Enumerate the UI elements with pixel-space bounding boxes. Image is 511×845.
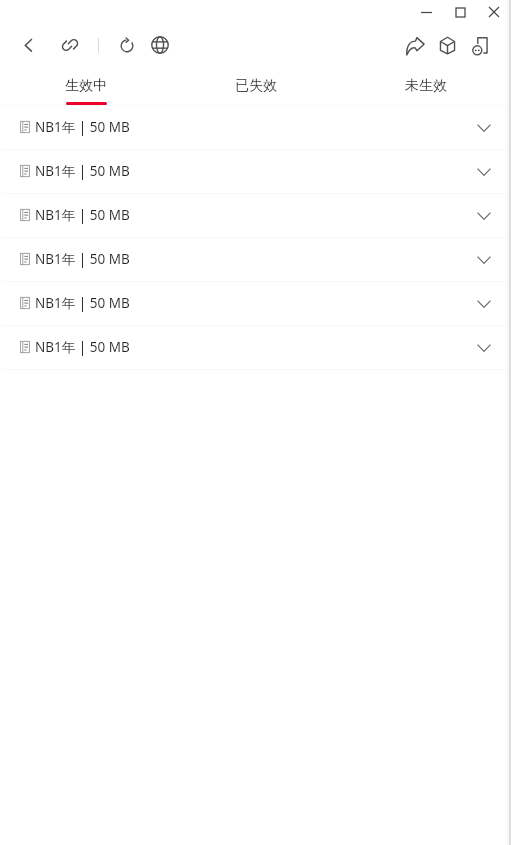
button[interactable]: Expand [470, 202, 498, 230]
button[interactable]: 生效中 [0, 66, 171, 106]
button[interactable]: More options [465, 24, 493, 66]
staticText: NB1年 | 50 MB [35, 206, 130, 224]
button[interactable]: Refresh [112, 24, 140, 66]
button[interactable]: 未生效 [341, 66, 511, 106]
button[interactable]: Language [146, 24, 174, 66]
staticText: NB1年 | 50 MB [35, 162, 130, 180]
button[interactable]: Maximize [443, 0, 477, 24]
staticText: 未生效 [405, 77, 447, 95]
button[interactable]: NB1年 | 50 MB [0, 326, 511, 369]
button[interactable]: Minimize [409, 0, 443, 24]
button[interactable]: NB1年 | 50 MB [0, 282, 511, 325]
button[interactable]: Expand [470, 246, 498, 274]
button[interactable]: Expand [470, 334, 498, 362]
button[interactable]: Share [401, 24, 429, 66]
button[interactable]: Copy link [56, 24, 84, 66]
button[interactable]: Expand [470, 158, 498, 186]
button[interactable]: NB1年 | 50 MB [0, 238, 511, 281]
staticText: NB1年 | 50 MB [35, 338, 130, 356]
button[interactable]: NB1年 | 50 MB [0, 150, 511, 193]
button[interactable]: 3D view [433, 24, 461, 66]
button[interactable]: Expand [470, 114, 498, 142]
staticText: 生效中 [65, 77, 107, 95]
button[interactable]: Back [14, 24, 42, 66]
staticText: 已失效 [235, 77, 277, 95]
button[interactable]: NB1年 | 50 MB [0, 106, 511, 149]
staticText: NB1年 | 50 MB [35, 118, 130, 136]
staticText: NB1年 | 50 MB [35, 294, 130, 312]
button[interactable]: Expand [470, 290, 498, 318]
button[interactable]: Close [477, 0, 511, 24]
staticText: NB1年 | 50 MB [35, 250, 130, 268]
button[interactable]: NB1年 | 50 MB [0, 194, 511, 237]
button[interactable]: 已失效 [171, 66, 341, 106]
